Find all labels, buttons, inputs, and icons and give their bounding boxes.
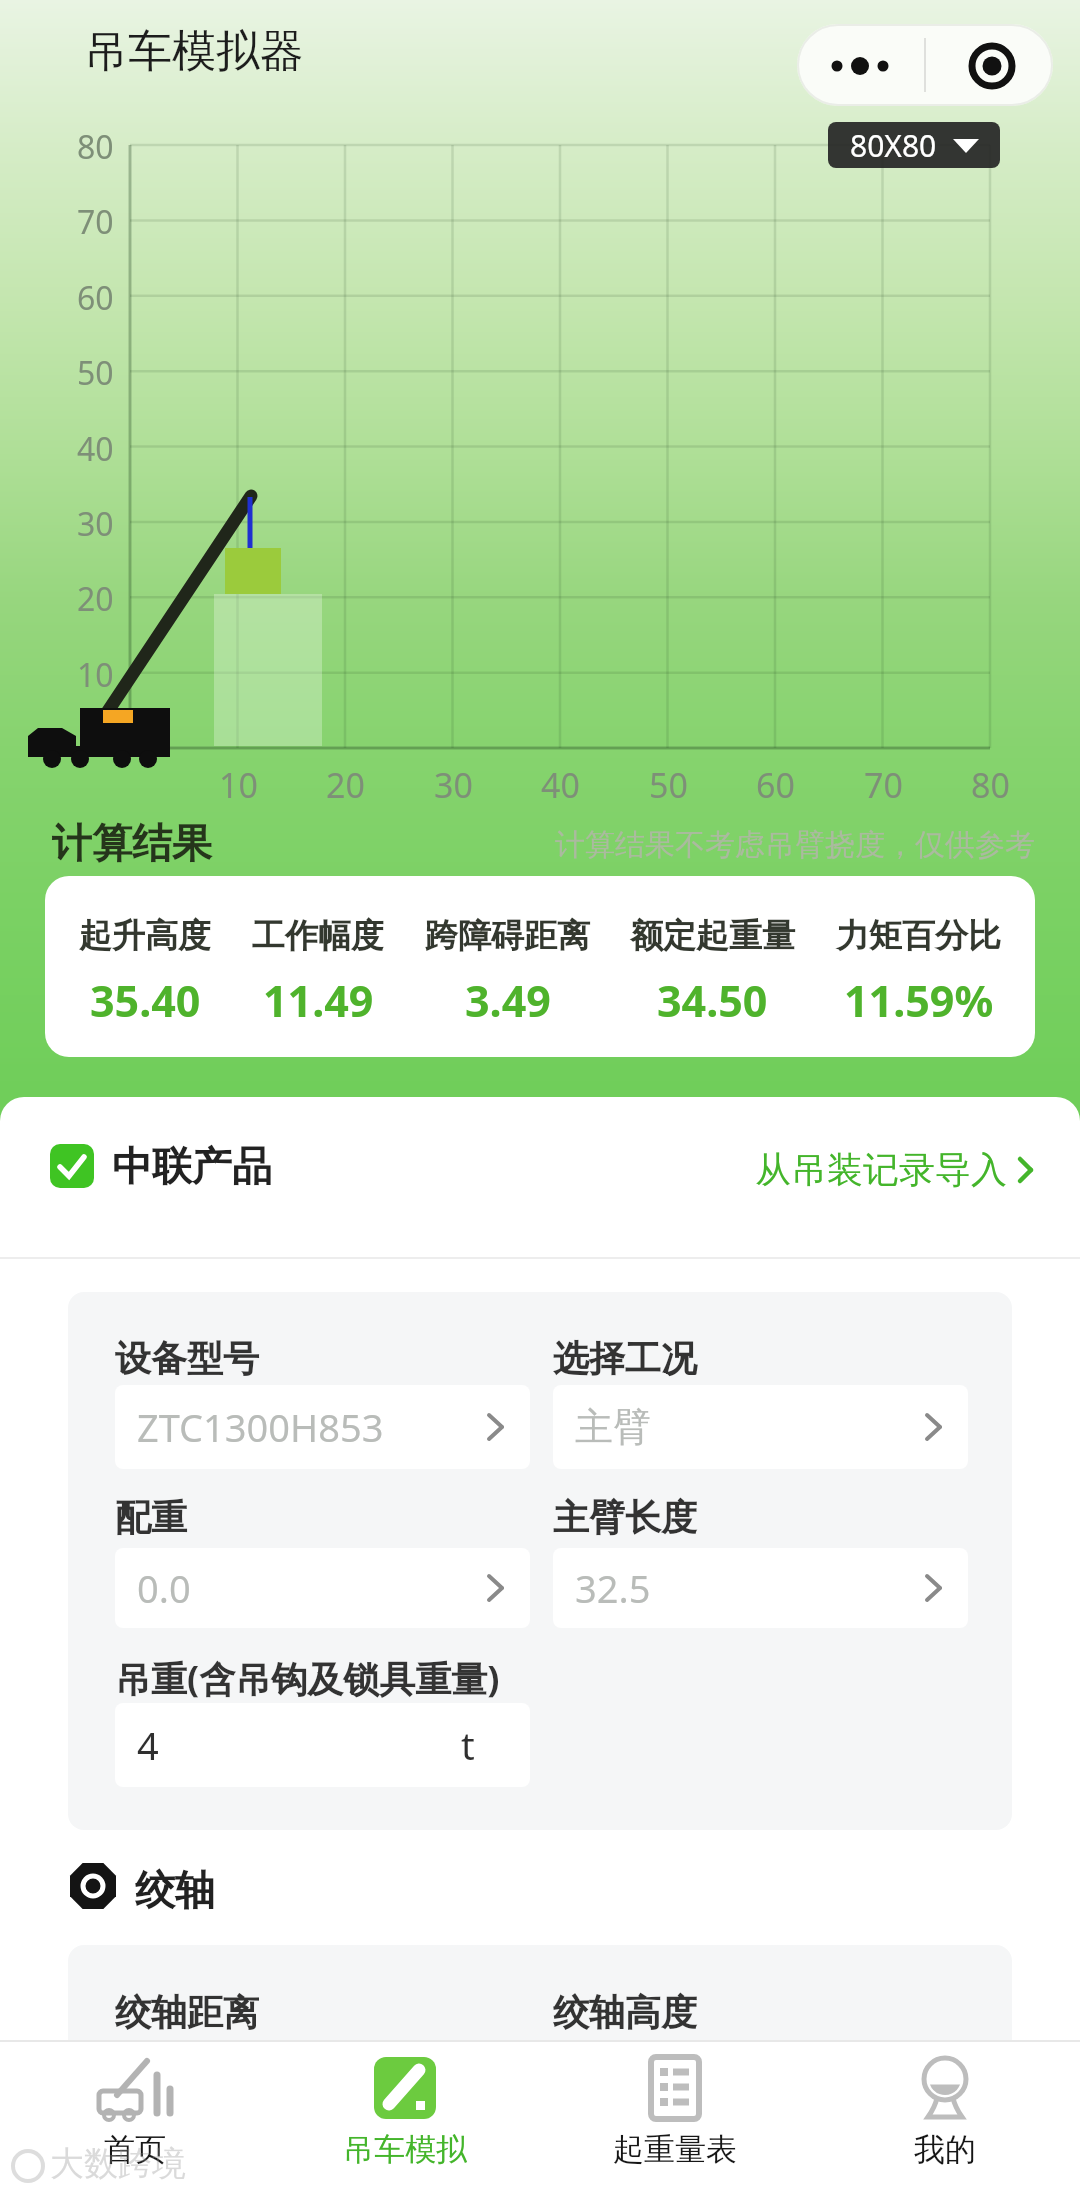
staticText: 80X80: [850, 125, 937, 166]
staticText: 4: [137, 1719, 159, 1771]
staticText: 80: [971, 762, 1010, 808]
staticText: 0.0: [137, 1562, 191, 1614]
button[interactable]: ZTC1300H853: [115, 1385, 530, 1469]
button[interactable]: 主臂: [553, 1385, 968, 1469]
staticText: 首页: [104, 2130, 166, 2169]
staticText: 设备型号: [115, 1336, 259, 1381]
staticText: 40: [541, 762, 580, 808]
staticText: 3.49: [465, 971, 551, 1030]
button[interactable]: [50, 1144, 94, 1188]
staticText: 我的: [914, 2130, 976, 2169]
staticText: 大数跨境: [50, 2142, 186, 2185]
staticText: 吊重(含吊钩及锁具重量): [115, 1654, 500, 1703]
staticText: 70: [77, 200, 114, 244]
staticText: 绞轴距离: [115, 1990, 259, 2035]
staticText: 50: [649, 762, 688, 808]
staticText: 配重: [115, 1495, 187, 1540]
staticText: 32.5: [575, 1562, 651, 1614]
staticText: 20: [77, 577, 114, 621]
staticText: 20: [326, 762, 365, 808]
button[interactable]: 从吊装记录导入: [755, 1147, 1035, 1192]
staticText: 吊车模拟器: [84, 24, 304, 79]
staticText: 起重量表: [613, 2130, 737, 2169]
staticText: 中联产品: [112, 1141, 272, 1191]
staticText: 11.49: [263, 971, 374, 1030]
staticText: 跨障碍距离: [425, 915, 590, 957]
staticText: 绞轴高度: [553, 1990, 697, 2035]
staticText: 力矩百分比: [836, 915, 1001, 957]
button[interactable]: 0.0: [115, 1548, 530, 1628]
staticText: 60: [756, 762, 795, 808]
button[interactable]: 首页: [5, 2054, 265, 2169]
staticText: 额定起重量: [630, 915, 795, 957]
staticText: 主臂: [575, 1403, 651, 1451]
staticText: 工作幅度: [252, 915, 384, 957]
staticText: 30: [434, 762, 473, 808]
staticText: 10: [77, 653, 114, 697]
staticText: 80: [77, 125, 114, 169]
staticText: 40: [77, 427, 114, 471]
staticText: 60: [77, 276, 114, 320]
staticText: 11.59%: [844, 971, 994, 1030]
staticText: 计算结果: [52, 818, 212, 868]
button[interactable]: 4: [115, 1703, 530, 1787]
staticText: 起升高度: [79, 915, 211, 957]
button[interactable]: 80X80: [828, 122, 1000, 168]
staticText: 计算结果不考虑吊臂挠度，仅供参考: [555, 826, 1035, 864]
staticText: 70: [864, 762, 903, 808]
staticText: 吊车模拟: [343, 2130, 467, 2169]
button[interactable]: 起重量表: [545, 2054, 805, 2169]
staticText: 选择工况: [553, 1336, 697, 1381]
button[interactable]: 32.5: [553, 1548, 968, 1628]
staticText: 30: [77, 502, 114, 546]
staticText: 主臂长度: [553, 1495, 697, 1540]
staticText: 10: [219, 762, 258, 808]
staticText: 绞轴: [135, 1865, 215, 1915]
staticText: 从吊装记录导入: [755, 1147, 1007, 1192]
staticText: 50: [77, 351, 114, 395]
staticText: t: [461, 1719, 475, 1771]
button[interactable]: 我的: [815, 2054, 1075, 2169]
staticText: 35.40: [90, 971, 201, 1030]
button[interactable]: [797, 24, 1053, 106]
button[interactable]: 吊车模拟: [275, 2054, 535, 2169]
staticText: ZTC1300H853: [137, 1401, 384, 1453]
staticText: 34.50: [657, 971, 768, 1030]
